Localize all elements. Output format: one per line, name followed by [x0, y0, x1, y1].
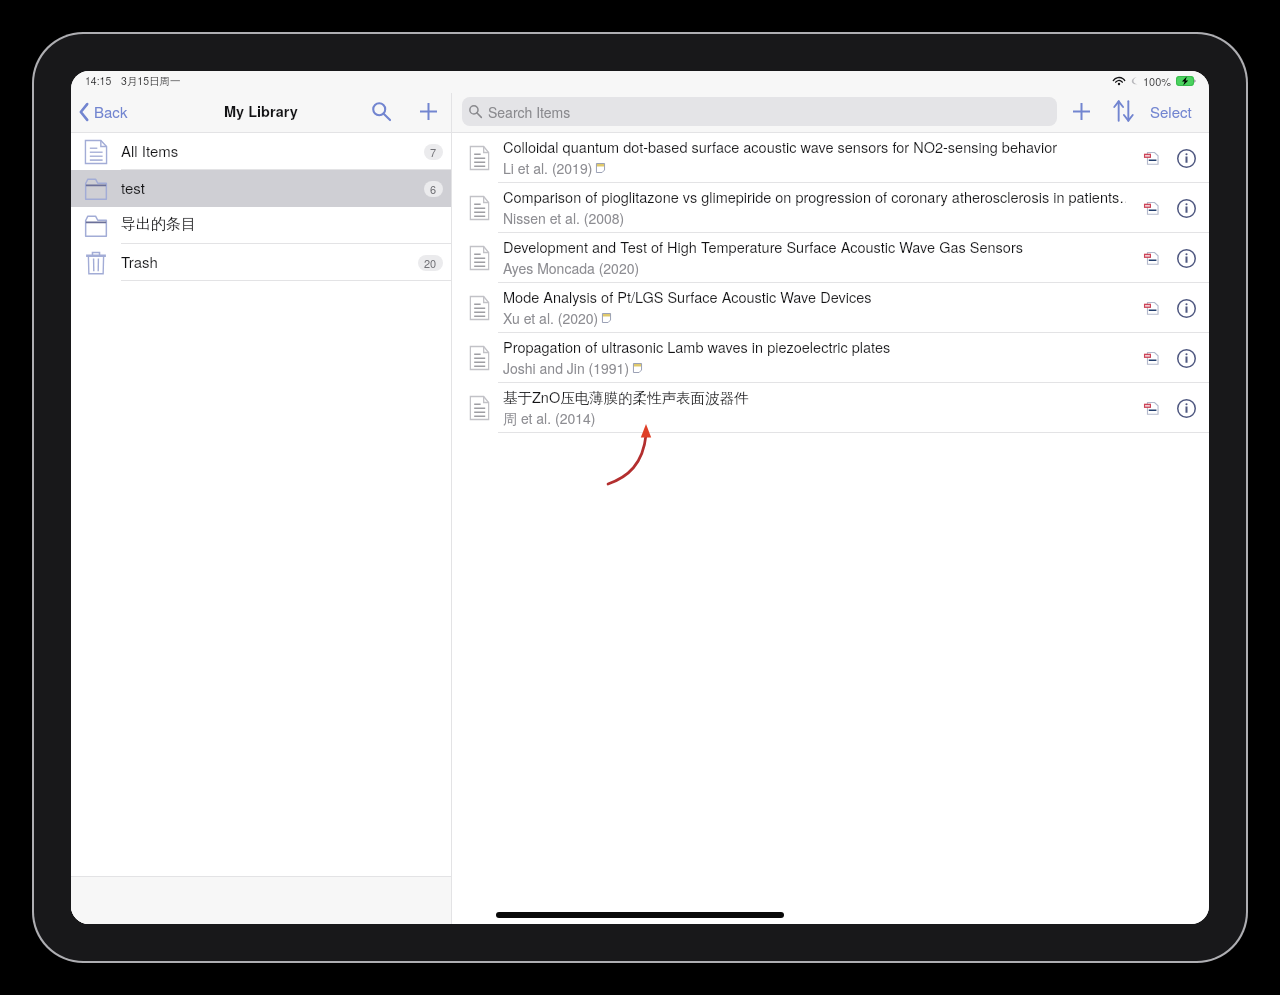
button[interactable]: Propagation of ultrasonic Lamb waves in …: [452, 333, 1209, 383]
staticText: 3月15日周一: [121, 73, 181, 88]
staticText: All Items: [121, 140, 179, 161]
staticText: My Library: [224, 101, 298, 122]
staticText: test: [121, 177, 145, 198]
staticText: Trash: [121, 251, 158, 272]
button[interactable]: Comparison of pioglitazone vs glimepirid…: [452, 183, 1209, 233]
staticText: Comparison of pioglitazone vs glimepirid…: [503, 186, 1126, 207]
button[interactable]: Item info: [1170, 338, 1202, 378]
button[interactable]: Search Items: [462, 97, 1057, 126]
button[interactable]: Search: [362, 93, 400, 129]
staticText: Joshi and Jin (1991): [503, 358, 630, 378]
button[interactable]: Item info: [1170, 388, 1202, 428]
button[interactable]: Open PDF: [1136, 138, 1166, 178]
staticText: Li et al. (2019): [503, 158, 593, 178]
button[interactable]: Select: [1144, 95, 1198, 128]
staticText: Colloidal quantum dot-based surface acou…: [503, 136, 1058, 157]
button[interactable]: Sort: [1107, 93, 1139, 129]
button[interactable]: Item info: [1170, 288, 1202, 328]
button[interactable]: Item info: [1170, 138, 1202, 178]
staticText: Search Items: [488, 102, 571, 122]
staticText: 周 et al. (2014): [503, 408, 596, 428]
button[interactable]: Item info: [1170, 238, 1202, 278]
button[interactable]: All Items: [71, 133, 451, 170]
staticText: 7: [430, 144, 437, 160]
button[interactable]: Open PDF: [1136, 238, 1166, 278]
button[interactable]: Open PDF: [1136, 338, 1166, 378]
staticText: 14:15: [85, 73, 112, 88]
staticText: 20: [424, 255, 437, 271]
button[interactable]: Mode Analysis of Pt/LGS Surface Acoustic…: [452, 283, 1209, 333]
staticText: 6: [430, 181, 437, 197]
staticText: Back: [94, 101, 128, 122]
button[interactable]: Back: [71, 95, 138, 128]
button[interactable]: Item info: [1170, 188, 1202, 228]
button[interactable]: 基于ZnO压电薄膜的柔性声表面波器件: [452, 383, 1209, 433]
button[interactable]: Colloidal quantum dot-based surface acou…: [452, 133, 1209, 183]
button[interactable]: Development and Test of High Temperature…: [452, 233, 1209, 283]
staticText: Nissen et al. (2008): [503, 208, 625, 228]
button[interactable]: Open PDF: [1136, 188, 1166, 228]
staticText: Mode Analysis of Pt/LGS Surface Acoustic…: [503, 286, 872, 307]
staticText: Xu et al. (2020): [503, 308, 599, 328]
button[interactable]: test: [71, 170, 451, 207]
staticText: Select: [1150, 101, 1192, 122]
staticText: Propagation of ultrasonic Lamb waves in …: [503, 336, 891, 357]
staticText: 100%: [1143, 73, 1172, 89]
staticText: Development and Test of High Temperature…: [503, 236, 1024, 257]
staticText: Ayes Moncada (2020): [503, 258, 640, 278]
button[interactable]: Open PDF: [1136, 388, 1166, 428]
staticText: 基于ZnO压电薄膜的柔性声表面波器件: [503, 386, 749, 407]
button[interactable]: 导出的条目: [71, 207, 451, 244]
staticText: 导出的条目: [121, 215, 196, 234]
button[interactable]: Add item: [1065, 93, 1097, 129]
button[interactable]: Open PDF: [1136, 288, 1166, 328]
button[interactable]: Add collection: [409, 93, 447, 129]
button[interactable]: Trash: [71, 244, 451, 281]
